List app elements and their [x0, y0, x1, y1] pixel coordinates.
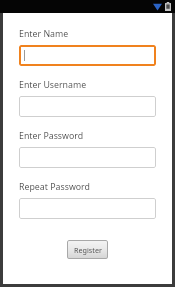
staticText: Repeat Password [19, 181, 90, 193]
staticText: Enter Name [19, 28, 69, 40]
button[interactable]: Enter Username [19, 96, 156, 117]
button[interactable]: Enter Name [19, 45, 156, 66]
other: Wifi signal [153, 3, 162, 11]
staticText: Register [74, 245, 102, 255]
staticText: Enter Username [19, 79, 87, 91]
other: Battery [165, 2, 171, 11]
staticText: Enter Password [19, 130, 84, 142]
button[interactable]: Register [67, 240, 108, 259]
button[interactable]: Repeat Password [19, 198, 156, 219]
button[interactable]: Enter Password [19, 147, 156, 168]
